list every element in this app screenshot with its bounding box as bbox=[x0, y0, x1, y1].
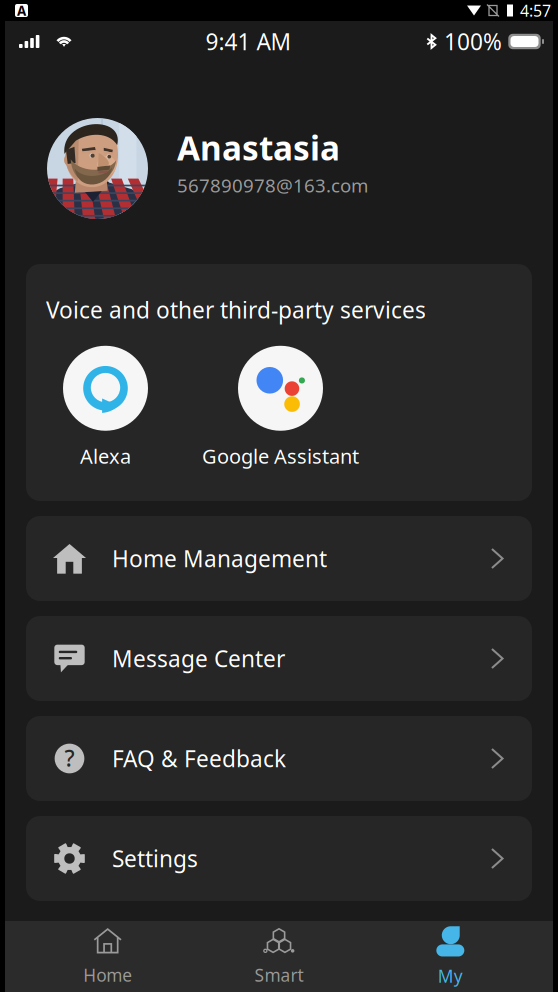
staticText: Home bbox=[83, 963, 132, 986]
button[interactable]: Message Center bbox=[26, 616, 532, 701]
staticText: ? bbox=[64, 743, 74, 773]
staticText: 9:41 AM bbox=[205, 26, 291, 56]
button[interactable]: My bbox=[365, 921, 536, 992]
button[interactable]: Alexa bbox=[26, 346, 185, 469]
button[interactable]: Google Assistant bbox=[185, 346, 376, 469]
staticText: Voice and other third-party services bbox=[46, 295, 426, 325]
staticText: 567890978@163.com bbox=[177, 173, 368, 197]
staticText: Alexa bbox=[80, 443, 131, 469]
staticText: 4:57 bbox=[520, 0, 551, 21]
staticText: Smart bbox=[254, 963, 303, 986]
button[interactable]: Smart bbox=[193, 921, 365, 992]
button[interactable]: ? bbox=[26, 716, 532, 801]
staticText: A bbox=[17, 2, 26, 19]
staticText: Message Center bbox=[112, 643, 285, 673]
staticText: Home Management bbox=[112, 543, 327, 573]
staticText: Anastasia bbox=[177, 125, 340, 170]
button[interactable]: Settings bbox=[26, 816, 532, 901]
staticText: Settings bbox=[112, 843, 198, 873]
staticText: Google Assistant bbox=[202, 443, 359, 469]
button[interactable]: Home bbox=[22, 921, 193, 992]
staticText: 100% bbox=[444, 26, 502, 56]
button[interactable]: Home Management bbox=[26, 516, 532, 601]
staticText: FAQ & Feedback bbox=[112, 743, 286, 773]
staticText: My bbox=[438, 964, 463, 987]
